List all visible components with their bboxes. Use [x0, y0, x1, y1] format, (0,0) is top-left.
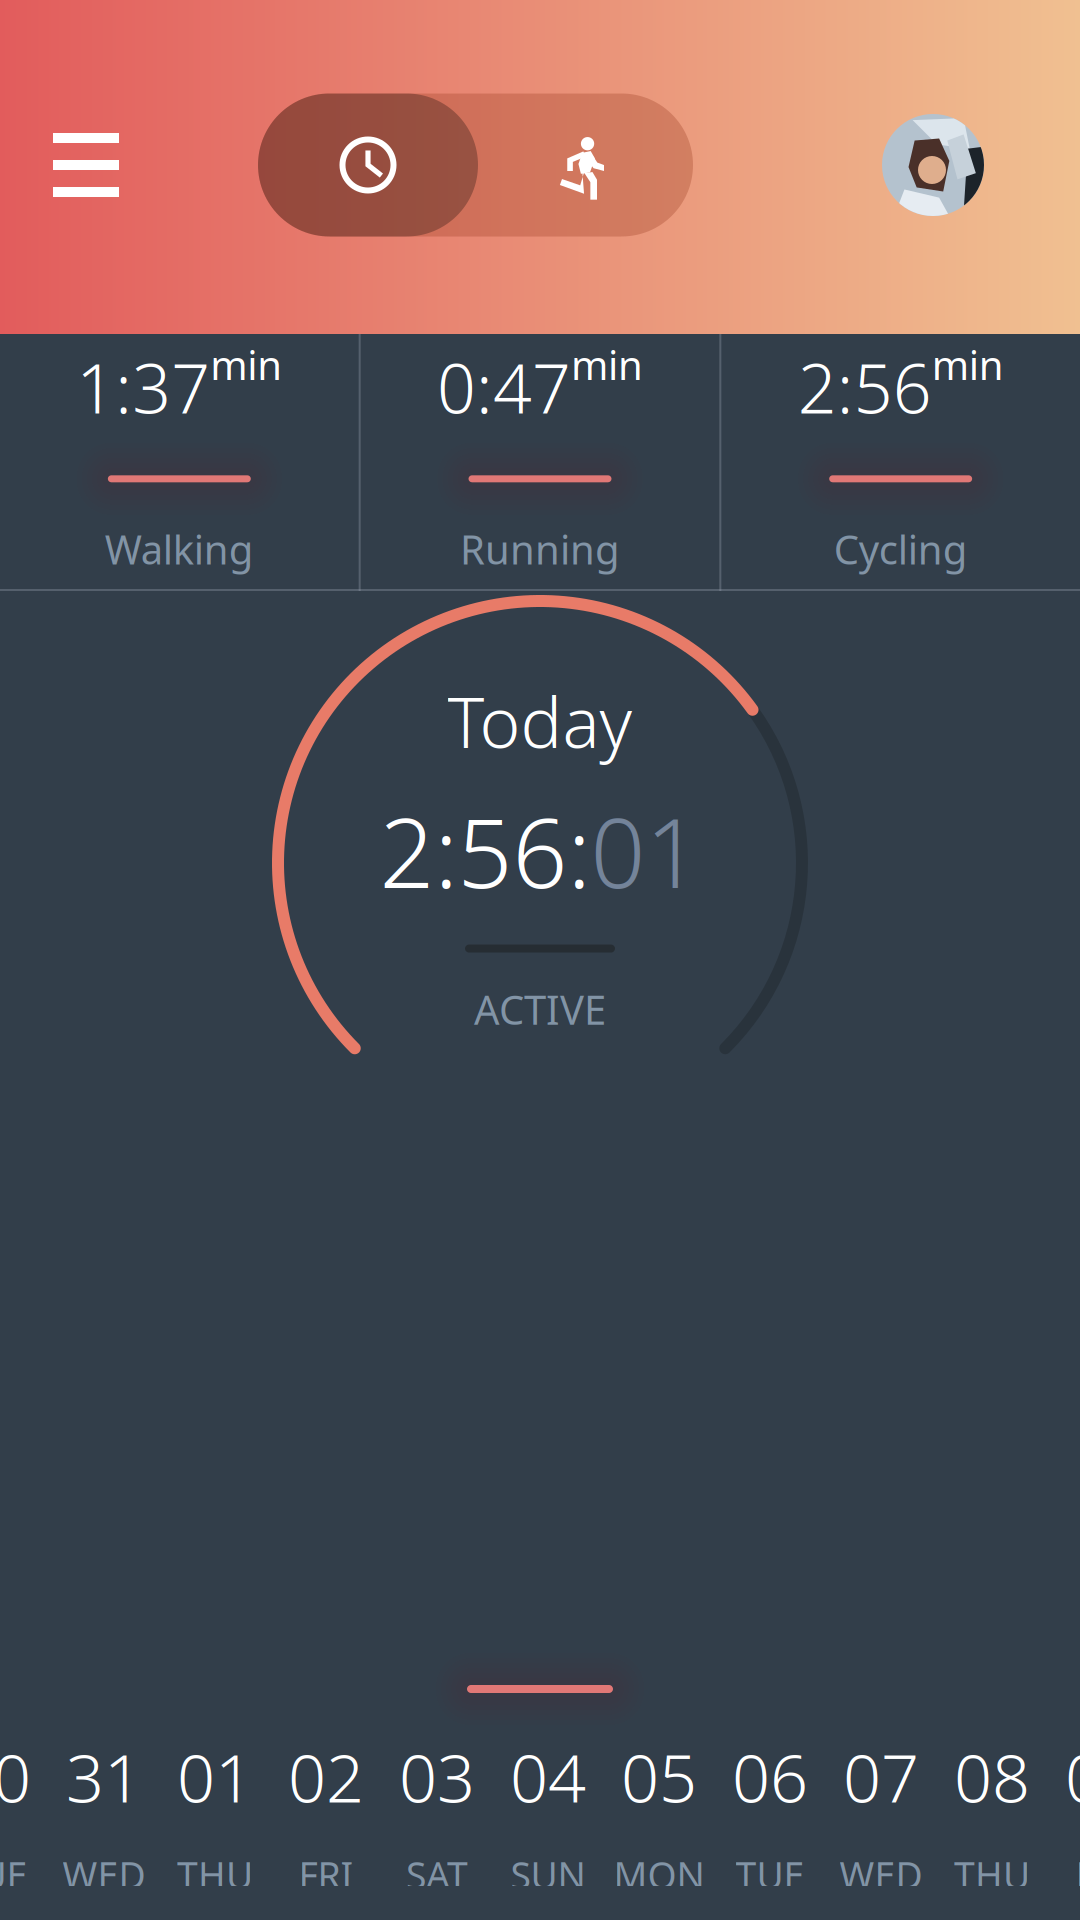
button[interactable]: 01 — [159, 1746, 270, 1886]
button[interactable]: 06 — [714, 1746, 825, 1886]
staticText: THU — [177, 1850, 253, 1900]
staticText: 06 — [732, 1732, 808, 1821]
staticText: 2:56: — [379, 787, 590, 915]
staticText: min — [571, 338, 643, 391]
staticText: 09 — [1065, 1732, 1080, 1821]
staticText: Walking — [105, 522, 254, 575]
staticText: THU — [954, 1850, 1030, 1900]
button[interactable]: Activity — [478, 93, 693, 236]
staticText: FRI — [1075, 1850, 1080, 1900]
button[interactable]: 04 — [492, 1746, 603, 1886]
staticText: 01 — [177, 1732, 253, 1821]
staticText: 02 — [288, 1732, 364, 1821]
staticText: Cycling — [834, 522, 968, 575]
staticText: SAT — [406, 1850, 468, 1900]
staticText: WED — [839, 1850, 922, 1900]
staticText: Today — [447, 675, 632, 767]
button[interactable]: 08 — [936, 1746, 1047, 1886]
staticText: 04 — [510, 1732, 586, 1821]
button[interactable]: 30 — [0, 1746, 48, 1886]
staticText: min — [210, 338, 282, 391]
staticText: 05 — [621, 1732, 697, 1821]
staticText: TUE — [735, 1850, 804, 1900]
button[interactable]: Duration — [258, 93, 478, 236]
button[interactable]: Profile — [882, 114, 984, 216]
staticText: 2:56 — [798, 342, 932, 432]
staticText: ACTIVE — [474, 983, 606, 1036]
staticText: 08 — [954, 1732, 1030, 1821]
button[interactable]: 07 — [825, 1746, 936, 1886]
button[interactable]: 05 — [603, 1746, 714, 1886]
staticText: 01 — [590, 787, 700, 915]
staticText: 30 — [0, 1732, 31, 1821]
staticText: 0:47 — [437, 342, 571, 432]
button[interactable]: 31 — [48, 1746, 159, 1886]
staticText: 31 — [66, 1732, 142, 1821]
button[interactable]: 03 — [381, 1746, 492, 1886]
staticText: TUE — [0, 1850, 27, 1900]
staticText: MON — [613, 1850, 704, 1900]
button[interactable]: 09 — [1047, 1746, 1080, 1886]
staticText: SUN — [510, 1850, 585, 1900]
staticText: FRI — [298, 1850, 353, 1900]
staticText: min — [932, 338, 1004, 391]
staticText: 1:37 — [76, 342, 210, 432]
staticText: Running — [460, 522, 620, 575]
staticText: WED — [62, 1850, 145, 1900]
staticText: 07 — [843, 1732, 919, 1821]
button[interactable]: 02 — [270, 1746, 381, 1886]
staticText: 03 — [399, 1732, 475, 1821]
button[interactable]: Menu — [53, 93, 119, 236]
